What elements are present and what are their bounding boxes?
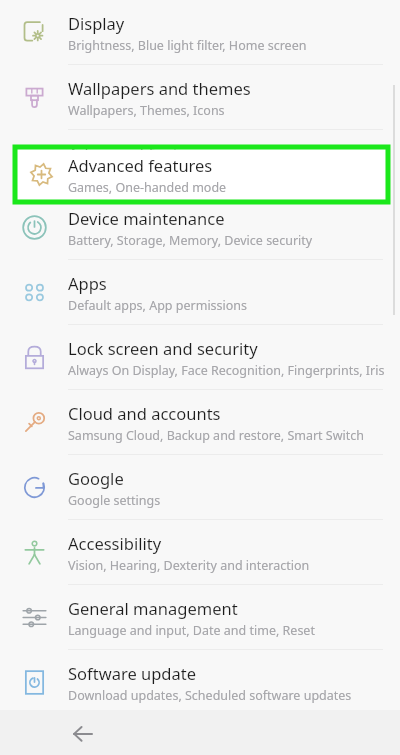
staticText: Lock screen and security xyxy=(68,337,258,359)
staticText: Google xyxy=(68,467,124,489)
staticText: Vision, Hearing, Dexterity and interacti… xyxy=(68,557,310,574)
staticText: Advanced features xyxy=(68,154,213,176)
staticText: Wallpapers and themes xyxy=(68,77,251,99)
button[interactable]: General management xyxy=(0,585,400,650)
button[interactable]: Display xyxy=(0,0,400,65)
staticText: Download updates, Scheduled software upd… xyxy=(68,687,352,704)
staticText: Device maintenance xyxy=(68,207,225,229)
staticText: Samsung Cloud, Backup and restore, Smart… xyxy=(68,427,365,444)
button[interactable]: Google xyxy=(0,455,400,520)
button[interactable]: Apps xyxy=(0,260,400,325)
staticText: Default apps, App permissions xyxy=(68,297,248,314)
button[interactable]: Software update xyxy=(0,650,400,715)
staticText: Wallpapers, Themes, Icons xyxy=(68,102,225,119)
staticText: Google settings xyxy=(68,492,161,509)
staticText: Games, One-handed mode xyxy=(68,179,227,196)
button[interactable]: Accessibility xyxy=(0,520,400,585)
staticText: Display xyxy=(68,12,125,34)
staticText: Language and input, Date and time, Reset xyxy=(68,622,315,639)
staticText: Advanced features xyxy=(68,142,213,164)
button[interactable]: Cloud and accounts xyxy=(0,390,400,455)
staticText: Software update xyxy=(68,662,196,684)
staticText: Cloud and accounts xyxy=(68,402,221,424)
button[interactable]: Device maintenance xyxy=(0,195,400,260)
staticText: General management xyxy=(68,597,238,619)
staticText: Battery, Storage, Memory, Device securit… xyxy=(68,232,313,249)
staticText: Always On Display, Face Recognition, Fin… xyxy=(68,362,385,379)
button[interactable]: Advanced features xyxy=(0,130,400,195)
button[interactable]: Back xyxy=(62,713,102,753)
staticText: Accessibility xyxy=(68,532,162,554)
staticText: Brightness, Blue light filter, Home scre… xyxy=(68,37,307,54)
staticText: Apps xyxy=(68,272,107,294)
button[interactable]: Wallpapers and themes xyxy=(0,65,400,130)
button[interactable]: Lock screen and security xyxy=(0,325,400,390)
staticText: Games, One-handed mode xyxy=(68,167,227,184)
